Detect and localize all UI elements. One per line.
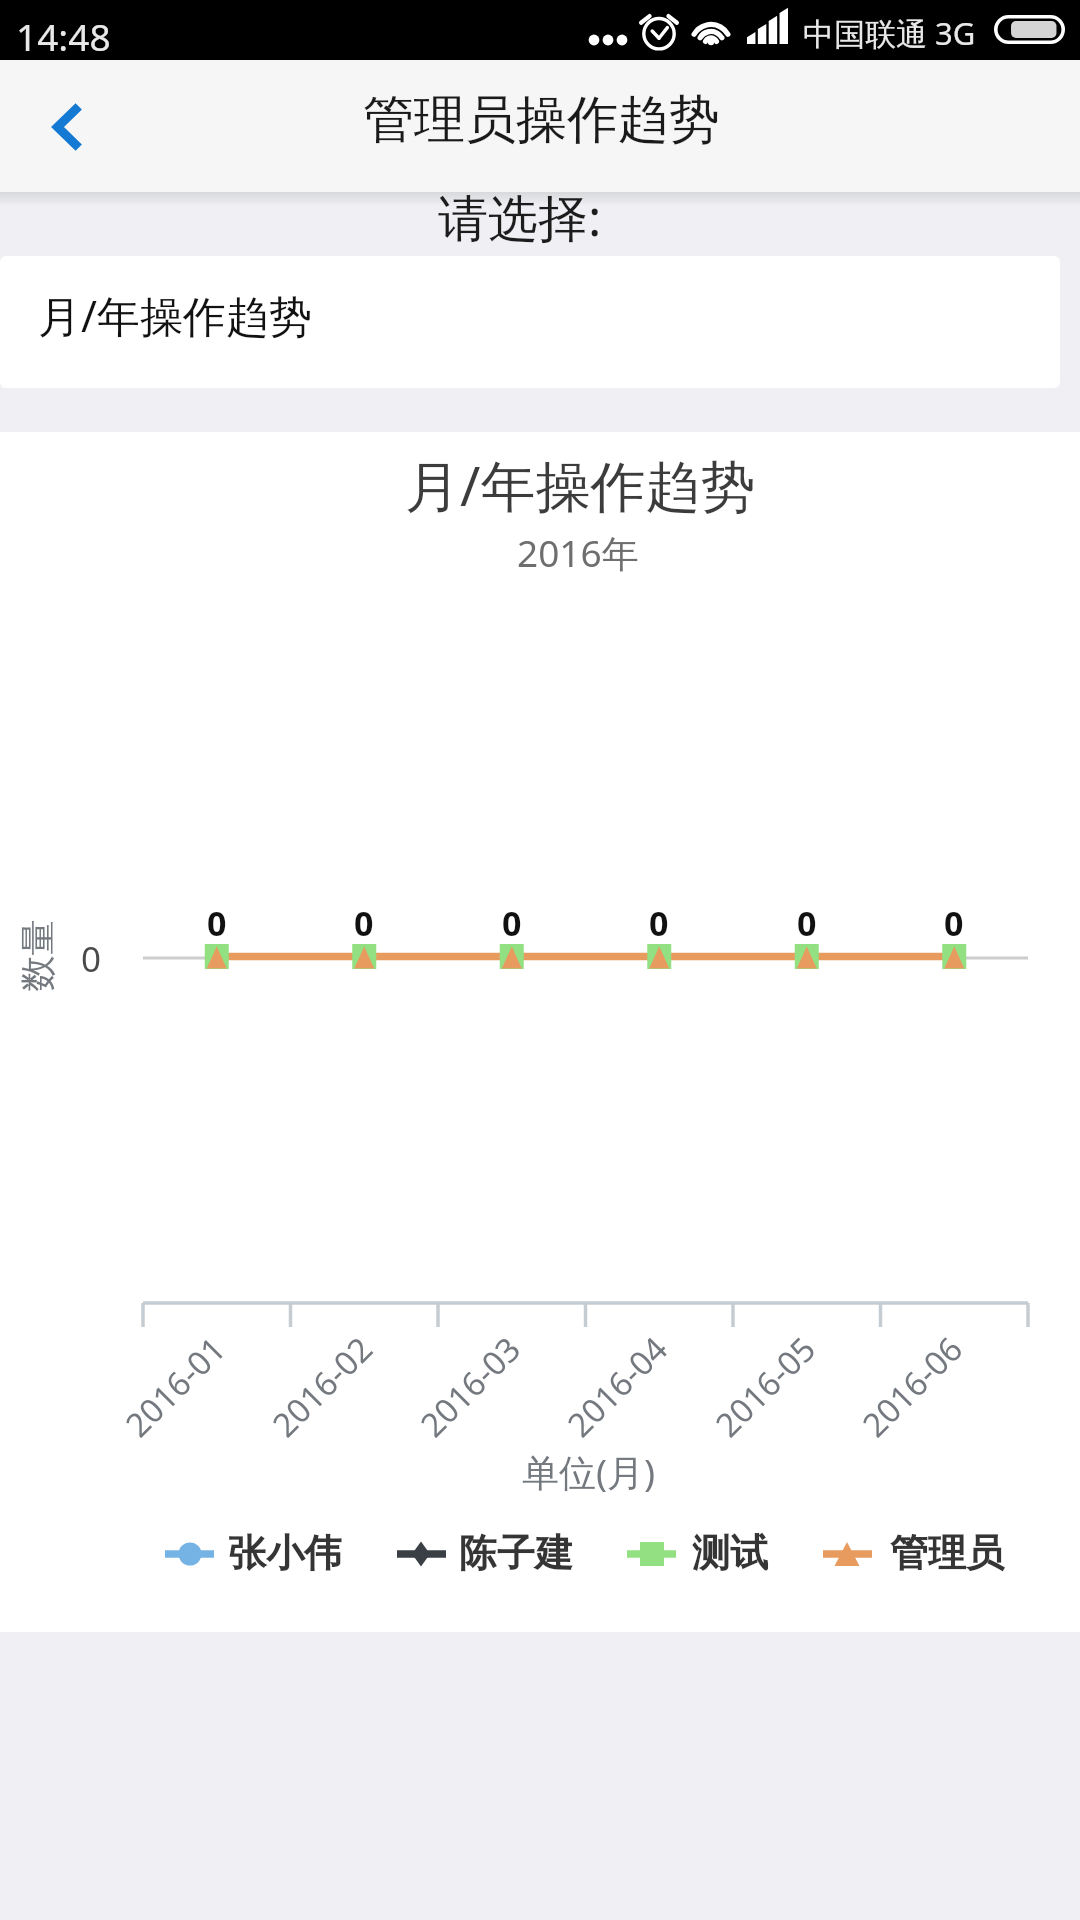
staticText: 0 — [797, 900, 817, 946]
staticText: 测试 — [692, 1529, 768, 1577]
staticText: 2016年 — [517, 527, 639, 578]
staticText: 0 — [944, 900, 964, 946]
staticText: 单位(月) — [522, 1446, 656, 1497]
staticText: 2016-05 — [705, 1327, 825, 1446]
button[interactable]: 张小伟 — [165, 1523, 340, 1583]
staticText: 2016-01 — [115, 1327, 235, 1446]
staticText: 14:48 — [16, 11, 111, 61]
staticText: 2016-04 — [557, 1327, 677, 1446]
button[interactable]: 测试 — [627, 1523, 768, 1583]
staticText: 管理员 — [890, 1529, 1004, 1577]
staticText: 2016-06 — [852, 1327, 972, 1446]
staticText: 0 — [81, 935, 102, 983]
staticText: 管理员操作趋势 — [363, 88, 720, 152]
staticText: 月/年操作趋势 — [38, 286, 312, 345]
button[interactable]: 陈子建 — [397, 1523, 573, 1583]
staticText: 请选择: — [438, 183, 602, 251]
staticText: 2016-02 — [262, 1327, 382, 1446]
staticText: 张小伟 — [228, 1529, 342, 1577]
staticText: 数量 — [14, 919, 59, 991]
staticText: 0 — [502, 900, 522, 946]
staticText: 中国联通 3G — [803, 12, 976, 54]
staticText: 陈子建 — [459, 1529, 573, 1577]
button[interactable]: Back — [0, 60, 132, 192]
staticText: 0 — [207, 900, 227, 946]
staticText: 0 — [649, 900, 669, 946]
button[interactable]: 管理员 — [823, 1523, 998, 1583]
staticText: 2016-03 — [410, 1327, 530, 1446]
staticText: 月/年操作趋势 — [405, 447, 756, 522]
button[interactable]: 月/年操作趋势 — [0, 256, 1060, 388]
staticText: 0 — [354, 900, 374, 946]
